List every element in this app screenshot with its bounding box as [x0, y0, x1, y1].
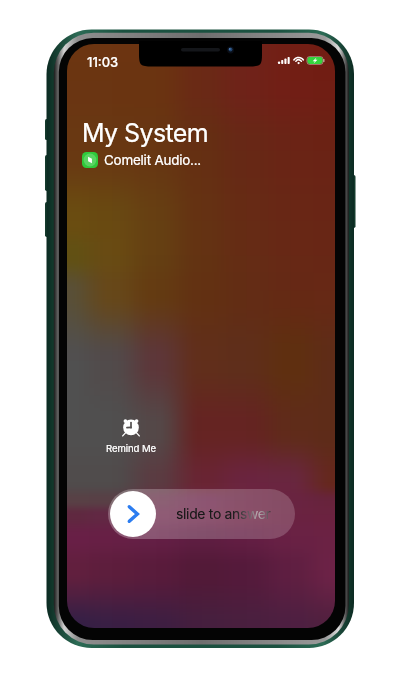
staticText: 11:03	[87, 54, 119, 70]
button[interactable]: Remind Me	[101, 418, 161, 455]
other: Answer	[110, 491, 156, 537]
staticText: Remind Me	[106, 443, 156, 455]
staticText: My System	[82, 118, 209, 148]
staticText: slide to answer	[176, 506, 271, 523]
other: Remind Me	[122, 418, 140, 436]
other: Status icons	[278, 57, 325, 64]
staticText: Comelit Audio...	[104, 152, 201, 168]
button[interactable]: Answer	[108, 489, 295, 539]
